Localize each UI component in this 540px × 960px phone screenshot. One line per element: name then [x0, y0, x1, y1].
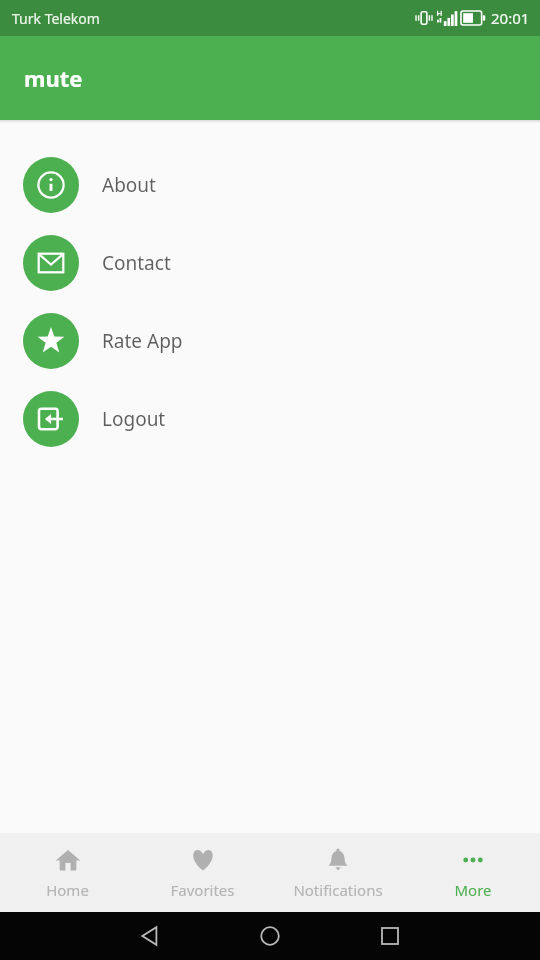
staticText: Turk Telekom: [12, 9, 100, 28]
button[interactable]: More: [405, 839, 540, 906]
button[interactable]: Recents: [330, 912, 450, 960]
button[interactable]: Logout: [0, 380, 540, 458]
staticText: Home: [46, 880, 89, 900]
button[interactable]: Favorites: [135, 839, 270, 906]
button[interactable]: Back: [90, 912, 210, 960]
button[interactable]: Home: [210, 912, 330, 960]
staticText: Rate App: [102, 328, 183, 354]
button[interactable]: Home: [0, 839, 135, 906]
staticText: Contact: [102, 250, 171, 276]
staticText: mute: [24, 63, 83, 93]
button[interactable]: About: [0, 146, 540, 224]
staticText: About: [102, 172, 156, 198]
button[interactable]: Contact: [0, 224, 540, 302]
button[interactable]: Rate App: [0, 302, 540, 380]
button[interactable]: Notifications: [270, 839, 405, 906]
staticText: Logout: [102, 406, 166, 432]
staticText: Favorites: [170, 880, 235, 900]
staticText: 20:01: [491, 8, 530, 28]
staticText: More: [454, 880, 492, 900]
staticText: Notifications: [293, 880, 383, 900]
